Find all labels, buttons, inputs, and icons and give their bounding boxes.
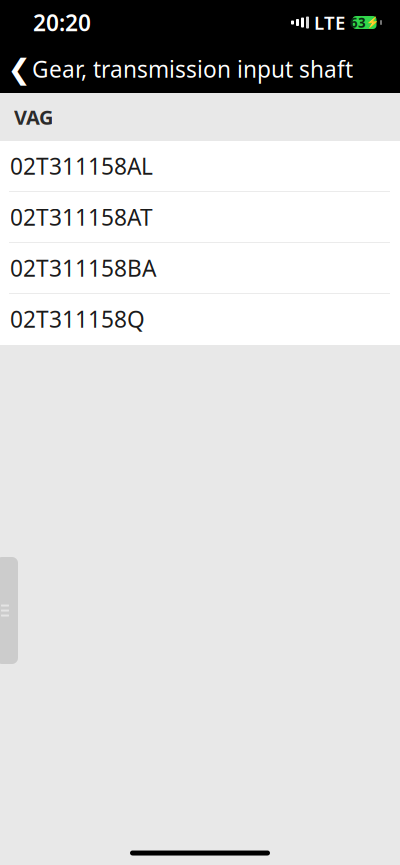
staticText: LTE	[314, 10, 345, 35]
staticText: ⚡	[366, 16, 379, 29]
staticText: 63	[350, 14, 366, 31]
button[interactable]: Back	[6, 45, 32, 93]
staticText: ❮	[7, 53, 30, 85]
button[interactable]: 02T311158AT	[0, 192, 400, 243]
button[interactable]: Open side panel	[0, 557, 14, 664]
button[interactable]: 02T311158Q	[0, 294, 400, 345]
staticText: Gear, transmission input shaft	[32, 54, 353, 84]
staticText: VAG	[14, 104, 53, 130]
staticText: 02T311158Q	[10, 304, 145, 334]
staticText: 02T311158AT	[10, 202, 153, 232]
button[interactable]: 02T311158AL	[0, 141, 400, 192]
staticText: 20:20	[33, 7, 91, 37]
button[interactable]: 02T311158BA	[0, 243, 400, 294]
staticText: 02T311158AL	[10, 151, 153, 181]
staticText: 02T311158BA	[10, 253, 156, 283]
